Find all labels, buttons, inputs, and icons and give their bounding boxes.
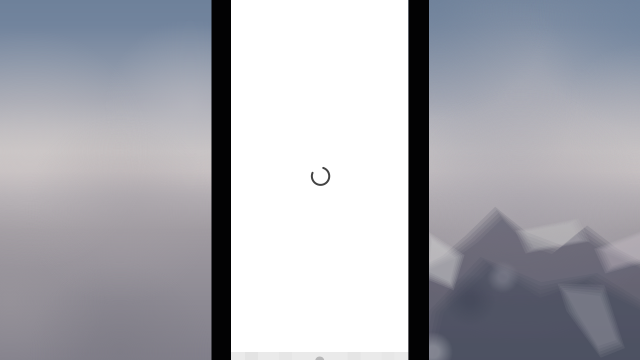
button[interactable]: Share: [313, 352, 327, 360]
